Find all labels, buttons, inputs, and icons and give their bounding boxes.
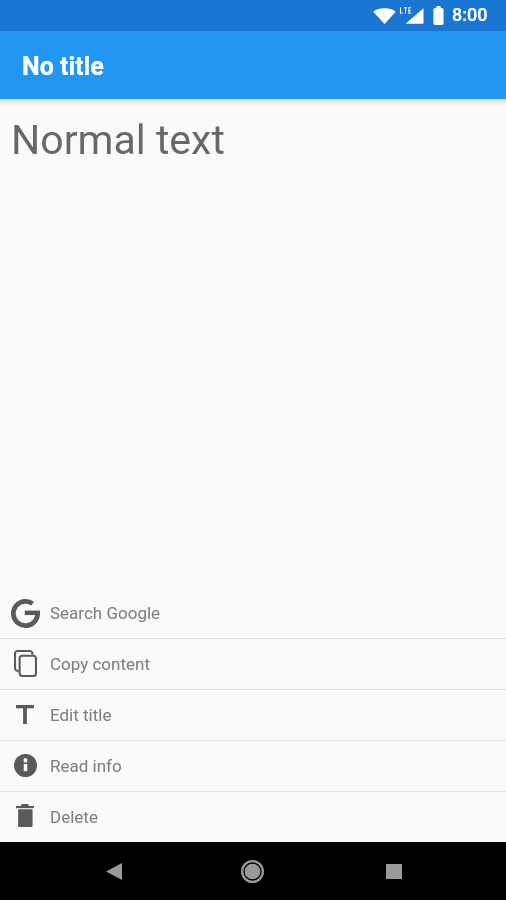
button[interactable]: Home [208,842,297,900]
button[interactable]: Read info [0,741,506,791]
staticText: Delete [50,807,98,827]
staticText: Search Google [50,603,161,623]
staticText: Copy content [50,654,150,674]
button[interactable]: Delete [0,792,506,842]
button[interactable]: Edit title [0,690,506,740]
button[interactable]: Copy content [0,639,506,689]
staticText: Normal text [11,116,225,164]
staticText: Read info [50,756,122,776]
staticText: Edit title [50,705,112,725]
staticText: No title [22,52,104,81]
staticText: 8:00 [452,4,488,25]
button[interactable]: Search Google [0,588,506,638]
button[interactable]: Recent apps [349,842,438,900]
button[interactable]: Back [69,842,158,900]
